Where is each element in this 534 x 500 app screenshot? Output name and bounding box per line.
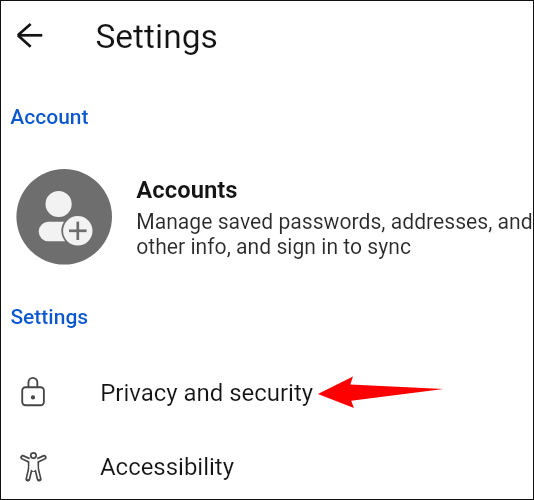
staticText: Manage saved passwords, addresses, and o…	[136, 209, 533, 259]
staticText: Privacy and security	[100, 379, 313, 407]
button[interactable]: Privacy and security	[1, 357, 533, 431]
button[interactable]: Accessibility	[1, 431, 533, 499]
staticText: Accounts	[136, 176, 238, 204]
staticText: Settings	[10, 305, 88, 330]
staticText: Settings	[95, 17, 218, 56]
staticText: Accessibility	[100, 452, 234, 480]
staticText: Account	[10, 105, 89, 130]
button[interactable]: Accounts	[1, 151, 533, 283]
button[interactable]: Navigate up	[8, 15, 52, 59]
